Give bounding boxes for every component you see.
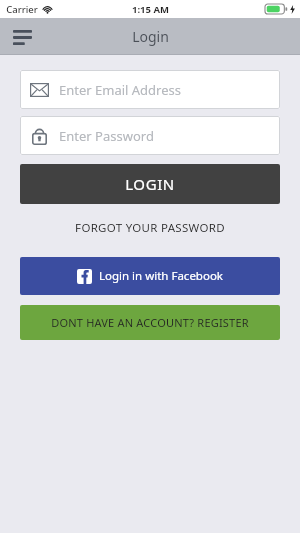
button[interactable]: FORGOT YOUR PASSWORD <box>0 220 300 236</box>
button[interactable]: Enter Email Address <box>20 70 280 109</box>
staticText: FORGOT YOUR PASSWORD <box>75 220 225 236</box>
staticText: LOGIN <box>125 174 175 194</box>
staticText: Login <box>132 27 169 46</box>
button[interactable]: Login in with Facebook <box>20 257 280 295</box>
staticText: Carrier <box>6 3 38 16</box>
staticText: Login in with Facebook <box>99 268 223 284</box>
button[interactable]: Enter Password <box>20 116 280 155</box>
button[interactable]: DONT HAVE AN ACCOUNT? REGISTER <box>20 305 280 340</box>
button[interactable]: Open navigation menu <box>8 23 36 51</box>
staticText: Enter Password <box>59 127 154 145</box>
staticText: DONT HAVE AN ACCOUNT? REGISTER <box>51 315 249 330</box>
staticText: Enter Email Address <box>59 81 181 99</box>
button[interactable]: LOGIN <box>20 164 280 204</box>
staticText: 1:15 AM <box>132 3 169 16</box>
